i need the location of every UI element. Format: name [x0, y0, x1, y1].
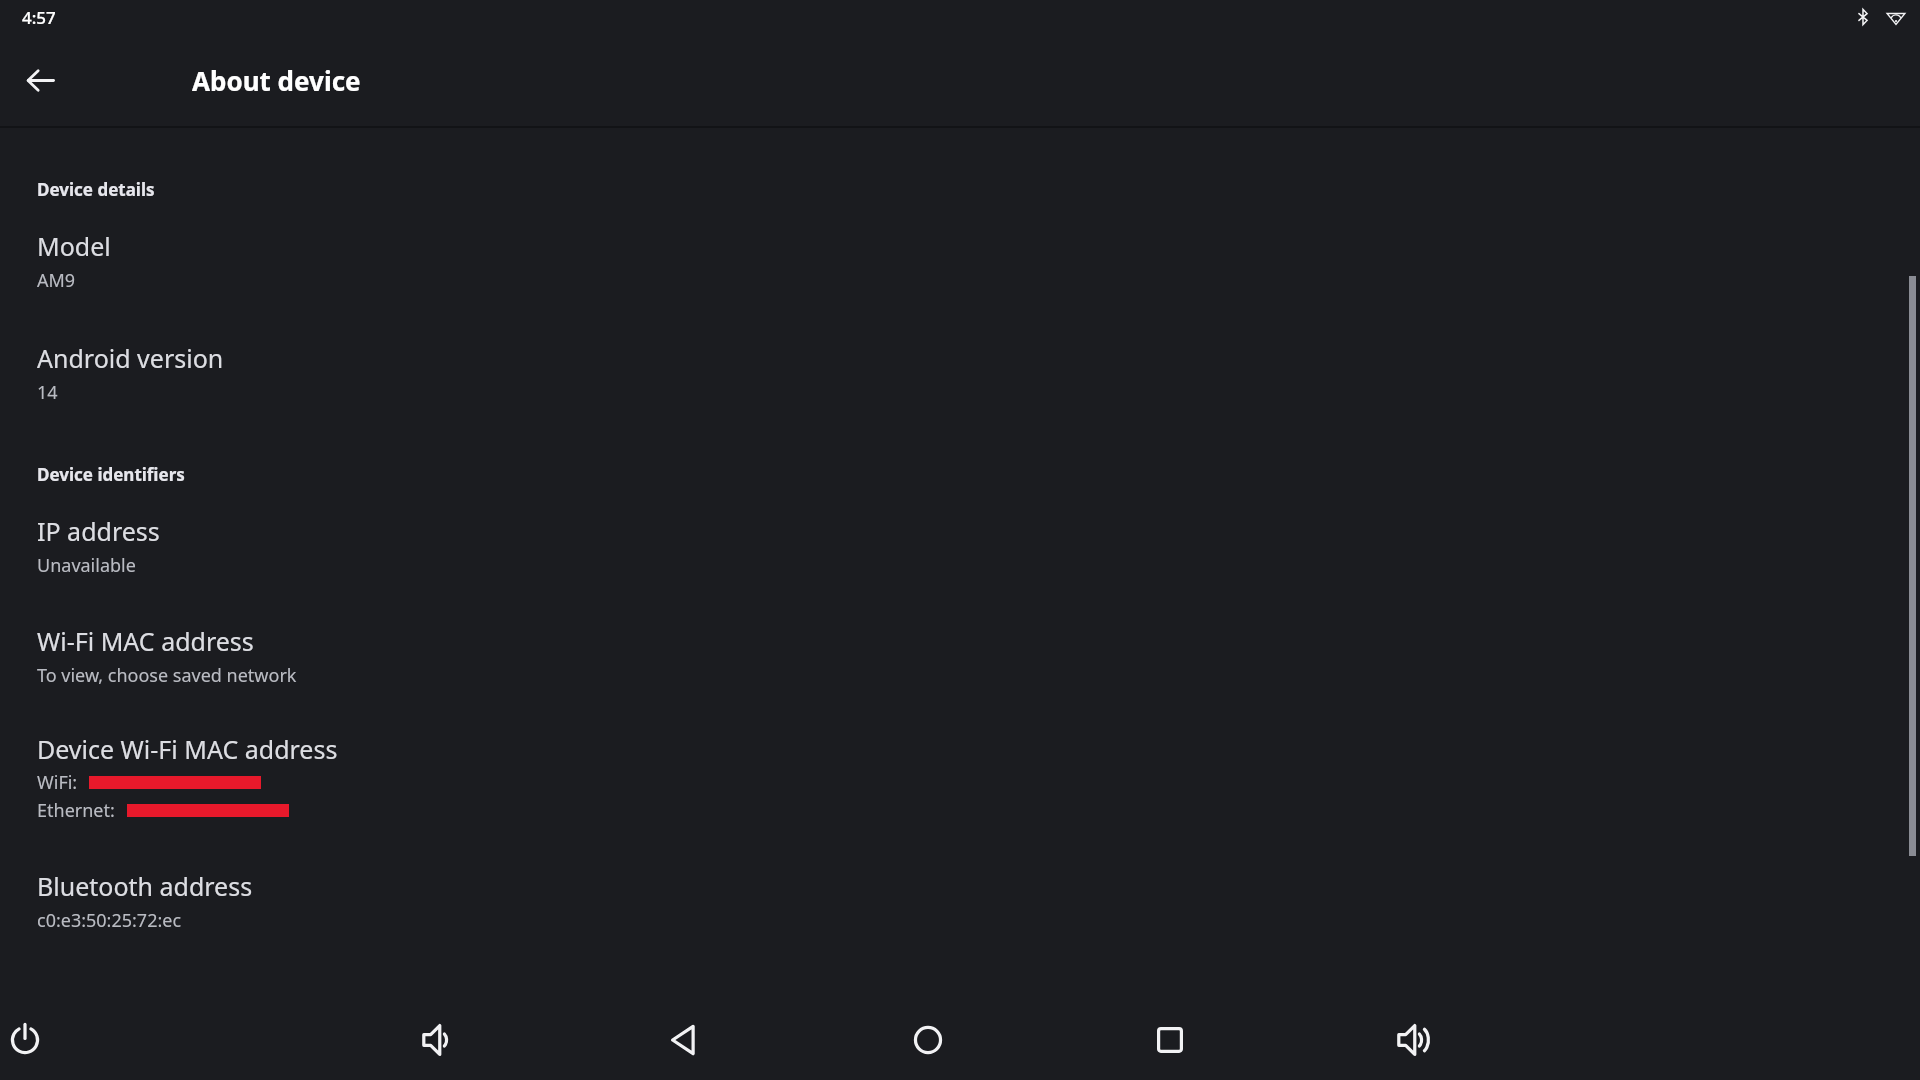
button[interactable]: IP address — [0, 512, 1920, 580]
staticText: Ethernet: — [37, 798, 115, 823]
staticText: AM9 — [37, 268, 76, 293]
button[interactable]: Bluetooth address — [0, 867, 1920, 935]
button[interactable]: Volume up — [1382, 1008, 1446, 1072]
staticText: 4:57 — [22, 6, 56, 29]
staticText: About device — [192, 63, 361, 98]
staticText: Device details — [37, 178, 155, 201]
staticText: Device identifiers — [37, 463, 185, 486]
button[interactable]: Model — [0, 227, 1920, 295]
staticText: Model — [37, 229, 111, 263]
staticText: Android version — [37, 341, 224, 375]
staticText: WiFi: — [37, 770, 78, 795]
staticText: c0:e3:50:25:72:ec — [37, 908, 182, 933]
button[interactable]: Android version — [0, 339, 1920, 407]
staticText: 14 — [37, 380, 58, 405]
button[interactable]: Wi-Fi MAC address — [0, 622, 1920, 690]
button[interactable]: Home — [896, 1008, 960, 1072]
staticText: IP address — [37, 514, 160, 548]
button[interactable]: Back — [652, 1008, 716, 1072]
button[interactable]: Device Wi-Fi MAC address — [0, 730, 1920, 825]
button[interactable]: Volume down — [407, 1008, 471, 1072]
staticText: Unavailable — [37, 553, 136, 578]
staticText: Bluetooth address — [37, 869, 253, 903]
staticText: Device Wi-Fi MAC address — [37, 732, 338, 766]
button[interactable]: Recent apps — [1138, 1008, 1202, 1072]
button[interactable]: Power — [0, 1008, 50, 1072]
button[interactable]: Back — [12, 52, 68, 108]
staticText: Wi-Fi MAC address — [37, 624, 254, 658]
staticText: To view, choose saved network — [37, 663, 297, 688]
